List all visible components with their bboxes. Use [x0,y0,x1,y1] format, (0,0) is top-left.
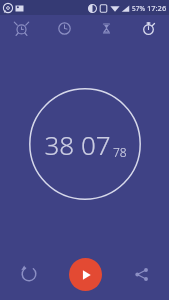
staticText: 78 [113,144,127,160]
button[interactable]: Start [69,258,102,291]
button[interactable]: Timer [85,15,127,41]
button[interactable]: Clock [43,15,85,41]
staticText: 57% [132,4,145,13]
button[interactable]: Alarm [0,15,43,41]
staticText: 38 07 [44,127,111,162]
button[interactable]: Share [113,248,169,300]
button[interactable]: Reset [0,248,57,300]
button[interactable]: Stopwatch [127,15,169,41]
staticText: 17:26 [147,3,167,13]
